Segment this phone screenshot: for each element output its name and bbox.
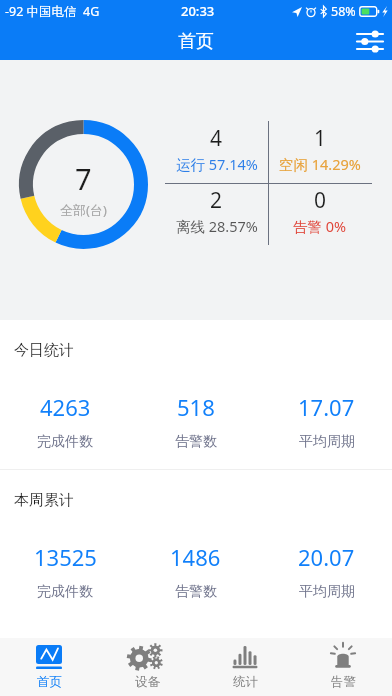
button[interactable]: 1486 [130, 542, 261, 601]
staticText: 今日统计 [14, 341, 74, 360]
staticText: -92 中国电信 4G [5, 3, 100, 20]
staticText: 518 [177, 392, 215, 422]
staticText: 0 [314, 186, 327, 215]
staticText: 1486 [170, 542, 221, 572]
button[interactable]: 13525 [0, 542, 130, 601]
staticText: 58% [331, 3, 356, 20]
staticText: 4263 [40, 392, 91, 422]
staticText: 7 [75, 159, 92, 198]
staticText: 17.07 [298, 392, 355, 422]
staticText: 告警数 [175, 433, 217, 451]
staticText: 首页 [178, 30, 214, 53]
button[interactable]: 20.07 [261, 542, 392, 601]
button[interactable]: 518 [130, 392, 261, 451]
staticText: 平均周期 [299, 583, 355, 601]
button[interactable]: 2 [165, 183, 268, 245]
staticText: 空闲 14.29% [279, 154, 361, 174]
button[interactable]: 1 [268, 121, 372, 183]
button[interactable]: 首页 [0, 638, 98, 696]
staticText: 本周累计 [14, 491, 74, 510]
button[interactable]: 告警 [294, 638, 392, 696]
staticText: 2 [210, 186, 223, 215]
button[interactable]: 设备 [98, 638, 196, 696]
staticText: 平均周期 [299, 433, 355, 451]
staticText: 告警 0% [293, 216, 347, 236]
staticText: 运行 57.14% [176, 154, 258, 174]
staticText: 告警 [331, 674, 356, 690]
staticText: 1 [314, 124, 327, 153]
button[interactable]: 4 [165, 121, 268, 183]
button[interactable]: Settings [348, 22, 392, 60]
button[interactable]: 4263 [0, 392, 130, 451]
button[interactable]: 统计 [196, 638, 294, 696]
staticText: 13525 [34, 542, 97, 572]
staticText: 4 [210, 124, 223, 153]
staticText: 全部(台) [60, 201, 107, 219]
staticText: 统计 [233, 674, 258, 690]
staticText: 设备 [135, 674, 160, 690]
button[interactable]: 17.07 [261, 392, 392, 451]
staticText: 完成件数 [37, 583, 93, 601]
staticText: 告警数 [175, 583, 217, 601]
staticText: 20.07 [298, 542, 355, 572]
staticText: 离线 28.57% [176, 216, 258, 236]
staticText: 首页 [37, 674, 62, 690]
button[interactable]: 0 [268, 183, 372, 245]
staticText: 20:33 [181, 2, 215, 20]
staticText: 完成件数 [37, 433, 93, 451]
